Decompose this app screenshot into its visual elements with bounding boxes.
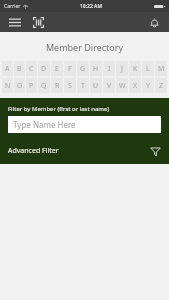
button[interactable]: D — [38, 61, 50, 76]
staticText: W — [119, 81, 126, 91]
staticText: C — [29, 64, 34, 74]
button[interactable]: G — [77, 61, 89, 76]
button[interactable]: A — [2, 61, 13, 76]
staticText: N — [5, 81, 11, 91]
button[interactable]: B — [14, 61, 25, 76]
staticText: I — [108, 64, 111, 74]
staticText: B — [17, 64, 22, 74]
staticText: L — [146, 64, 150, 74]
staticText: S — [68, 81, 72, 91]
button[interactable]: O — [14, 78, 25, 93]
staticText: E — [55, 64, 59, 74]
button[interactable]: H — [90, 61, 102, 76]
button[interactable]: R — [51, 78, 63, 93]
button[interactable]: Type Name Here — [8, 116, 161, 133]
button[interactable]: K — [129, 61, 141, 76]
staticText: Z — [159, 81, 164, 91]
staticText: X — [133, 81, 138, 91]
staticText: H — [93, 64, 99, 74]
button[interactable]: Scan code — [30, 14, 47, 31]
staticText: T — [81, 81, 85, 91]
button[interactable]: T — [77, 78, 89, 93]
button[interactable]: S — [64, 78, 76, 93]
staticText: D — [41, 64, 47, 74]
button[interactable]: Advanced Filter — [8, 144, 161, 158]
staticText: G — [80, 64, 86, 74]
button[interactable]: L — [142, 61, 154, 76]
button[interactable]: Y — [142, 78, 154, 93]
button[interactable]: P — [26, 78, 37, 93]
staticText: Carrier — [4, 3, 21, 10]
button[interactable]: J — [116, 61, 128, 76]
staticText: O — [17, 81, 23, 91]
staticText: V — [107, 81, 112, 91]
staticText: M — [158, 64, 165, 74]
staticText: Y — [146, 81, 150, 91]
staticText: Q — [41, 81, 47, 91]
button[interactable]: M — [155, 61, 167, 76]
button[interactable]: Z — [155, 78, 167, 93]
staticText: F — [68, 64, 72, 74]
button[interactable]: X — [129, 78, 141, 93]
button[interactable]: U — [90, 78, 102, 93]
staticText: Type Name Here — [13, 119, 76, 130]
button[interactable]: Notifications — [146, 14, 163, 31]
button[interactable]: C — [26, 61, 37, 76]
staticText: 10:22 AM — [80, 3, 102, 10]
button[interactable]: N — [2, 78, 13, 93]
button[interactable]: E — [51, 61, 63, 76]
button[interactable]: V — [103, 78, 115, 93]
button[interactable]: W — [116, 78, 128, 93]
staticText: Advanced Filter — [8, 146, 59, 156]
button[interactable]: I — [103, 61, 115, 76]
button[interactable]: Menu — [6, 14, 23, 31]
staticText: Filter by Member (first or last name) — [8, 105, 110, 113]
button[interactable]: F — [64, 61, 76, 76]
staticText: Member Directory — [0, 41, 169, 53]
staticText: K — [133, 64, 138, 74]
staticText: A — [5, 64, 10, 74]
staticText: P — [29, 81, 34, 91]
staticText: J — [121, 64, 123, 74]
staticText: R — [55, 81, 60, 91]
button[interactable]: Q — [38, 78, 50, 93]
staticText: U — [93, 81, 99, 91]
